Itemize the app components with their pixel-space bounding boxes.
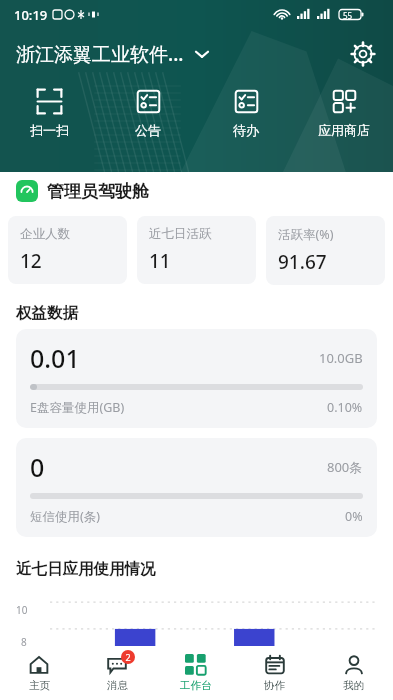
button[interactable]: 我的 xyxy=(314,646,393,700)
staticText: 活跃率(%) xyxy=(278,226,334,243)
staticText: 0% xyxy=(345,508,363,525)
staticText: 企业人数 xyxy=(20,226,70,242)
staticText: 8 xyxy=(21,635,27,649)
staticText: 待办 xyxy=(233,122,259,138)
button[interactable]: 协作 xyxy=(235,646,314,700)
button[interactable]: 设置 xyxy=(347,38,379,70)
button[interactable]: 待办 xyxy=(197,82,295,156)
staticText: 浙江添翼工业软件... xyxy=(16,41,184,67)
staticText: 我的 xyxy=(343,679,364,692)
staticText: 应用商店 xyxy=(318,122,370,138)
staticText: E盘容量使用(GB) xyxy=(30,399,125,416)
staticText: 短信使用(条) xyxy=(30,508,101,525)
button[interactable]: 近七日活跃 xyxy=(137,216,256,284)
button[interactable]: 2 xyxy=(78,646,156,700)
button[interactable]: 企业人数 xyxy=(8,216,127,284)
staticText: 0.10% xyxy=(327,399,363,416)
button[interactable]: 活跃率(%) xyxy=(266,216,385,285)
staticText: 10 xyxy=(16,603,28,617)
staticText: 公告 xyxy=(135,122,161,138)
staticText: 管理员驾驶舱 xyxy=(47,181,149,202)
button[interactable]: 浙江添翼工业软件... xyxy=(16,37,210,71)
staticText: 近七日应用使用情况 xyxy=(16,559,156,579)
staticText: 10.0GB xyxy=(319,349,363,367)
staticText: 权益数据 xyxy=(16,303,78,323)
staticText: 主页 xyxy=(29,679,50,692)
staticText: 2 xyxy=(125,651,131,663)
button[interactable]: 公告 xyxy=(99,82,197,156)
staticText: 消息 xyxy=(107,679,128,692)
staticText: 0.01 xyxy=(30,341,80,375)
staticText: 55 xyxy=(343,10,353,21)
button[interactable]: 工作台 xyxy=(156,646,235,700)
staticText: 11 xyxy=(149,248,171,274)
button[interactable]: 扫一扫 xyxy=(0,82,99,156)
button[interactable]: 主页 xyxy=(0,646,78,700)
button[interactable]: 0 xyxy=(16,438,377,537)
staticText: 0 xyxy=(30,450,45,484)
staticText: 扫一扫 xyxy=(30,122,69,138)
staticText: 协作 xyxy=(264,679,285,692)
button[interactable]: 应用商店 xyxy=(295,82,393,156)
staticText: 近七日活跃 xyxy=(149,226,212,242)
button[interactable]: 0.01 xyxy=(16,329,377,428)
staticText: 91.67 xyxy=(278,249,327,275)
staticText: 工作台 xyxy=(180,679,212,692)
staticText: 800条 xyxy=(327,458,363,476)
staticText: 10:19 xyxy=(14,6,48,24)
staticText: 12 xyxy=(20,248,42,274)
